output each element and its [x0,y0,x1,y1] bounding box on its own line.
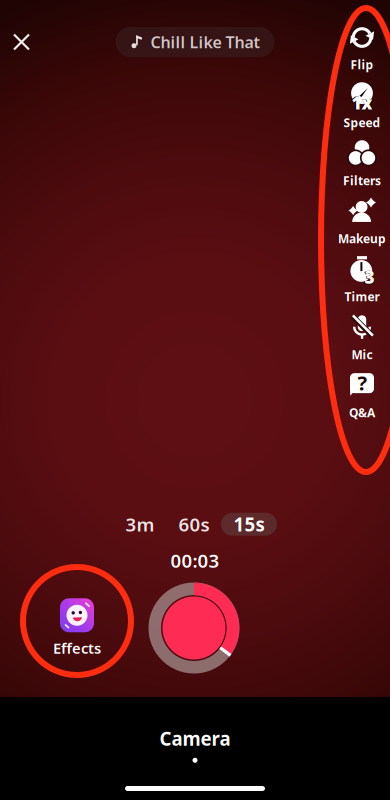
staticText: 15s [233,512,264,537]
staticText: Filters [343,172,381,188]
staticText: 3m [125,512,154,537]
button[interactable]: 15s [221,513,277,536]
staticText: 3 [364,264,376,290]
button[interactable]: 3m [113,511,167,537]
staticText: 60s [178,512,209,537]
staticText: Chill Like That [150,31,259,53]
staticText: 1x [351,91,372,114]
staticText: Effects [53,638,101,658]
button[interactable]: Close [0,20,43,63]
button[interactable]: Effects [53,598,101,658]
staticText: 00:03 [170,548,219,573]
button[interactable]: ? [333,370,390,422]
staticText: Camera [159,726,230,751]
button[interactable]: Mic [333,312,390,364]
button[interactable]: 1x [333,80,390,132]
staticText: Speed [343,114,380,130]
button[interactable]: Filters [333,138,390,190]
button[interactable]: Makeup [333,196,390,248]
staticText: Mic [351,346,372,362]
staticText: Q&A [349,404,375,420]
staticText: Flip [350,56,373,72]
button[interactable]: Camera [159,726,230,763]
staticText: Makeup [338,230,386,246]
button[interactable]: 3 [333,254,390,306]
staticText: Timer [344,288,379,304]
staticText: 3 [365,265,375,288]
staticText: ? [357,369,367,396]
button[interactable]: Chill Like That [115,27,274,57]
button[interactable]: 60s [167,511,221,537]
button[interactable]: Flip [333,22,390,74]
staticText: 1x [349,89,374,116]
